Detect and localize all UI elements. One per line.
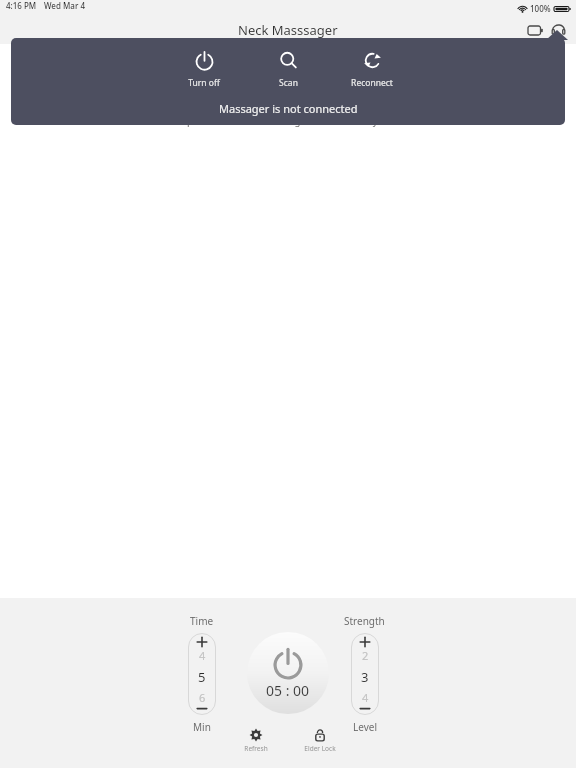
staticText: GuaSha xyxy=(360,53,397,67)
button[interactable]: Device connection xyxy=(546,18,570,42)
staticText: 4 xyxy=(199,648,206,663)
staticText: 05 : 00 xyxy=(266,681,310,700)
staticText: Strength xyxy=(344,614,385,628)
button[interactable]: GuaSha xyxy=(345,53,412,67)
staticText: Wed Mar 4 xyxy=(44,0,85,11)
button[interactable]: Auto xyxy=(165,53,232,67)
button[interactable]: Increase xyxy=(351,633,379,663)
staticText: Massge xyxy=(271,115,306,128)
button[interactable]: Increase xyxy=(188,633,216,663)
button[interactable]: Acupuncture xyxy=(165,70,232,128)
button[interactable]: Beat xyxy=(255,53,322,67)
staticText: Level xyxy=(353,720,377,734)
staticText: Acupuncture xyxy=(170,115,228,128)
button[interactable]: Decrease xyxy=(351,690,379,715)
button[interactable]: Reconnect xyxy=(343,48,401,91)
button[interactable]: Battery xyxy=(524,19,546,41)
staticText: Reconnect xyxy=(351,77,393,89)
staticText: 2 xyxy=(362,648,369,663)
button[interactable]: Decrease xyxy=(188,690,216,715)
staticText: Refresh xyxy=(244,744,268,753)
staticText: 6 xyxy=(199,690,206,705)
button[interactable]: Physical xyxy=(345,70,412,128)
staticText: Auto xyxy=(187,53,210,67)
staticText: 3 xyxy=(361,668,369,686)
staticText: 5 xyxy=(198,668,206,686)
staticText: Elder Lock xyxy=(304,744,336,753)
staticText: Beat xyxy=(278,53,300,67)
button[interactable]: Massge xyxy=(255,70,322,128)
staticText: 4:16 PM xyxy=(6,0,37,11)
staticText: Scan xyxy=(279,77,298,89)
staticText: Turn off xyxy=(188,77,220,89)
staticText: Time xyxy=(190,614,214,628)
staticText: 4 xyxy=(362,690,369,705)
staticText: Neck Masssager xyxy=(238,21,338,39)
staticText: 100% xyxy=(530,3,551,14)
staticText: Min xyxy=(193,720,211,734)
button[interactable]: Power xyxy=(247,632,329,714)
staticText: Physical xyxy=(361,115,397,128)
button[interactable]: Turn off xyxy=(175,48,233,91)
staticText: Massager is not connected xyxy=(219,101,358,116)
button[interactable]: Scan xyxy=(259,48,317,91)
button[interactable]: Refresh xyxy=(233,728,279,753)
button[interactable]: Elder Lock xyxy=(297,728,343,753)
